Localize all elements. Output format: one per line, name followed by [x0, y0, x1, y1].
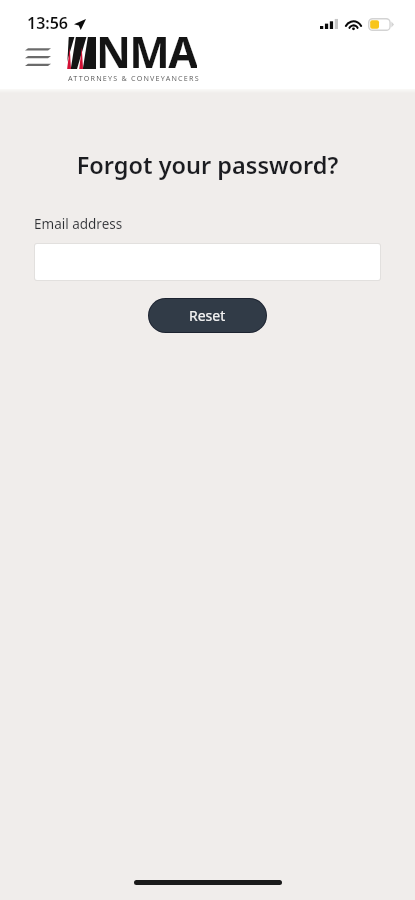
staticText: 13:56	[27, 12, 69, 34]
button[interactable]: Reset	[149, 299, 266, 332]
staticText: ATTORNEYS & CONVEYANCERS	[68, 73, 200, 83]
staticText: Forgot your password?	[0, 149, 415, 181]
button[interactable]: Menu	[18, 42, 57, 72]
staticText: Email address	[34, 215, 123, 233]
staticText: Reset	[189, 306, 226, 325]
staticText: NMA	[96, 22, 197, 68]
